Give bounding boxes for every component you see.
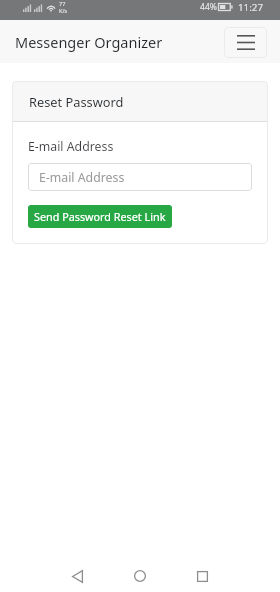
button[interactable]: Recents (172, 560, 232, 592)
staticText: E-mail Address (28, 138, 114, 155)
button[interactable]: Home (110, 560, 170, 592)
staticText: E-mail Address (39, 169, 125, 186)
staticText: Messenger Organizer (15, 32, 163, 52)
staticText: Send Password Reset Link (34, 209, 166, 224)
button[interactable]: Back (47, 560, 107, 592)
staticText: Reset Password (29, 93, 124, 110)
staticText: 77 (59, 0, 66, 7)
staticText: 11:27 (238, 1, 264, 14)
button[interactable]: E-mail Address (28, 163, 252, 191)
staticText: K/s (59, 7, 68, 14)
button[interactable]: Menu (224, 27, 267, 58)
staticText: 44% (200, 1, 217, 13)
button[interactable]: Send Password Reset Link (28, 205, 172, 228)
